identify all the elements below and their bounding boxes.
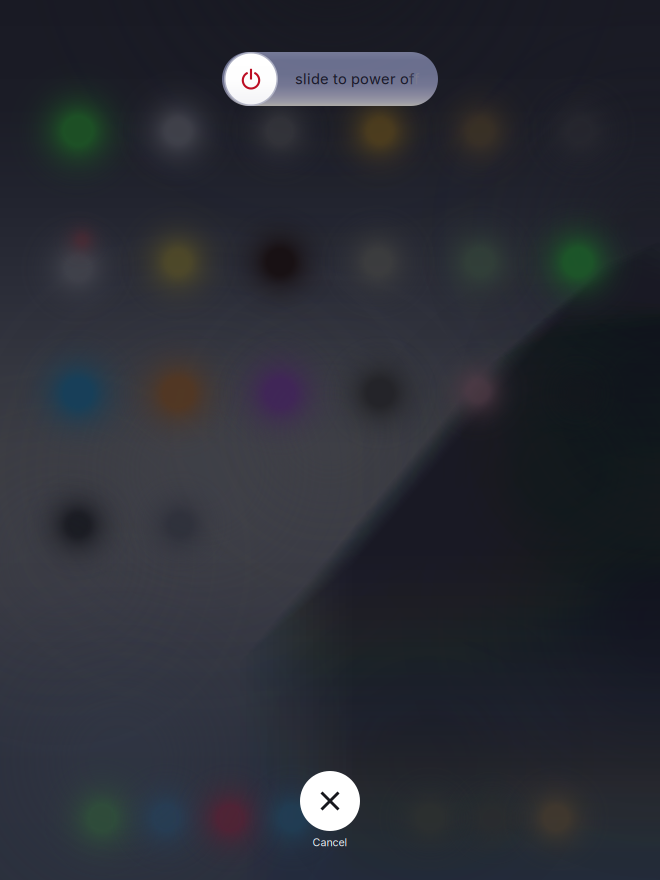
staticText: f (409, 70, 414, 88)
button[interactable]: Slide to power off (222, 52, 438, 106)
staticText: slide to power o (295, 70, 409, 88)
staticText: Cancel (312, 836, 347, 849)
button[interactable]: Cancel (300, 771, 360, 849)
staticText: f (414, 70, 419, 88)
